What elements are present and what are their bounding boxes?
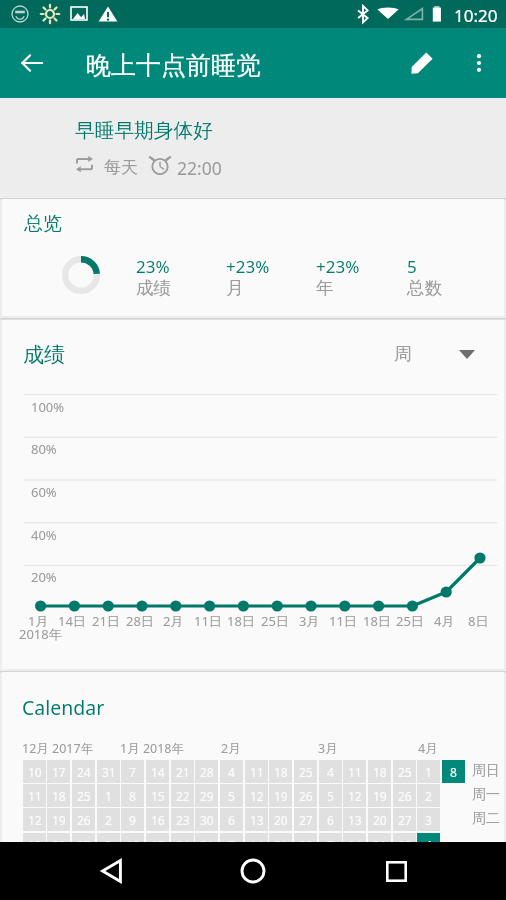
staticText: 11	[250, 764, 264, 780]
staticText: 28	[200, 764, 214, 780]
staticText: 100%	[31, 398, 65, 416]
staticText: 1	[105, 788, 112, 804]
staticText: 7	[228, 837, 235, 853]
staticText: 60%	[31, 483, 57, 501]
staticText: 每天	[104, 157, 138, 178]
staticText: +23%	[226, 255, 270, 278]
button[interactable]: More options	[455, 39, 503, 87]
staticText: 19	[52, 812, 66, 828]
staticText: 31	[200, 837, 214, 853]
staticText: 5	[228, 788, 235, 804]
staticText: 4	[228, 764, 235, 780]
staticText: +23%	[316, 255, 360, 278]
staticText: 6	[327, 812, 334, 828]
staticText: 8日	[468, 612, 489, 630]
button[interactable]: 周	[378, 334, 490, 374]
staticText: 19	[373, 788, 387, 804]
staticText: 周日	[472, 762, 500, 780]
staticText: 21日	[92, 612, 120, 630]
staticText: 16	[151, 812, 165, 828]
staticText: 25日	[261, 612, 289, 630]
staticText: 18日	[363, 612, 391, 630]
staticText: 8	[450, 764, 457, 780]
staticText: 12	[348, 788, 362, 804]
staticText: 周二	[472, 810, 500, 828]
staticText: 11日	[329, 612, 357, 630]
staticText: 18	[373, 764, 387, 780]
staticText: 20	[52, 837, 66, 853]
staticText: 晚上十点前睡觉	[86, 50, 261, 81]
button[interactable]: Recents	[366, 842, 426, 900]
staticText: 2018年	[19, 625, 62, 643]
staticText: 27	[398, 812, 412, 828]
staticText: 11日	[194, 612, 222, 630]
staticText: 25	[299, 764, 313, 780]
staticText: 25	[77, 788, 91, 804]
staticText: 25日	[396, 612, 424, 630]
staticText: 5	[407, 255, 417, 278]
staticText: 周一	[472, 786, 500, 804]
staticText: 2月	[221, 740, 241, 757]
staticText: 3	[105, 837, 112, 853]
staticText: 40%	[31, 526, 57, 544]
staticText: 28日	[126, 612, 154, 630]
staticText: 25	[398, 764, 412, 780]
staticText: 26	[398, 788, 412, 804]
button[interactable]: Back	[8, 39, 56, 87]
staticText: 14	[348, 837, 362, 853]
staticText: 早睡早期身体好	[75, 118, 213, 143]
staticText: 18	[52, 788, 66, 804]
staticText: 10	[28, 764, 42, 780]
staticText: 成绩	[23, 342, 65, 368]
staticText: 4月	[418, 740, 438, 757]
staticText: 20	[274, 812, 288, 828]
staticText: 9	[129, 812, 136, 828]
staticText: 12月 2017年	[22, 740, 94, 757]
staticText: 13	[250, 812, 264, 828]
staticText: 29	[200, 788, 214, 804]
staticText: 5	[327, 788, 334, 804]
staticText: 80%	[31, 440, 57, 458]
staticText: 27	[299, 812, 313, 828]
staticText: 总数	[407, 277, 442, 299]
staticText: 7	[327, 837, 334, 853]
staticText: 26	[77, 812, 91, 828]
staticText: 4	[327, 764, 334, 780]
staticText: 2	[105, 812, 112, 828]
staticText: 10:20	[454, 4, 498, 27]
button[interactable]: Back	[81, 842, 141, 900]
staticText: 27	[77, 837, 91, 853]
staticText: 13	[348, 812, 362, 828]
staticText: 24	[176, 837, 190, 853]
button[interactable]: Edit	[398, 39, 446, 87]
staticText: 6	[228, 812, 235, 828]
staticText: 12	[250, 788, 264, 804]
staticText: 14	[151, 764, 165, 780]
staticText: 21	[274, 837, 288, 853]
staticText: 8	[129, 788, 136, 804]
staticText: Calendar	[22, 694, 105, 721]
staticText: 3	[425, 812, 432, 828]
staticText: 28	[398, 837, 412, 853]
staticText: 28	[299, 837, 313, 853]
staticText: 年	[316, 277, 334, 299]
staticText: 成绩	[136, 277, 171, 299]
staticText: 20%	[31, 568, 57, 586]
staticText: 26	[299, 788, 313, 804]
staticText: 23%	[136, 255, 170, 278]
staticText: 18日	[227, 612, 255, 630]
staticText: 21	[176, 764, 190, 780]
staticText: 17	[151, 837, 165, 853]
staticText: 15	[151, 788, 165, 804]
staticText: 7	[129, 764, 136, 780]
button[interactable]: Home	[223, 842, 283, 900]
staticText: 3月	[299, 612, 320, 630]
staticText: 19	[274, 788, 288, 804]
staticText: 24	[77, 764, 91, 780]
staticText: 2月	[163, 612, 184, 630]
staticText: 21	[373, 837, 387, 853]
staticText: 13	[28, 837, 42, 853]
staticText: 2	[425, 788, 432, 804]
staticText: 12	[28, 812, 42, 828]
staticText: 1月 2018年	[120, 740, 185, 757]
